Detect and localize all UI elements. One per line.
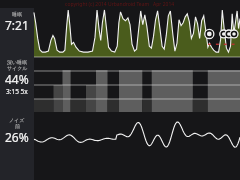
- button[interactable]: 深い睡眠: [0, 56, 34, 114]
- staticText: 44%: [5, 71, 29, 87]
- staticText: 深い睡眠: [7, 59, 28, 65]
- staticText: 7:21: [5, 17, 29, 33]
- staticText: 前: [15, 123, 20, 129]
- staticText: 3:15 5x: [6, 87, 28, 96]
- staticText: 26%: [5, 129, 29, 145]
- button[interactable]: ノイズ: [0, 114, 34, 180]
- staticText: サイクル: [7, 65, 28, 71]
- staticText: ノイズ: [9, 117, 25, 123]
- button[interactable]: 睡眠: [0, 8, 34, 56]
- staticText: 睡眠: [12, 11, 22, 17]
- staticText: copyright (c) 2014 Urbandroid Team Apr 2…: [65, 1, 175, 8]
